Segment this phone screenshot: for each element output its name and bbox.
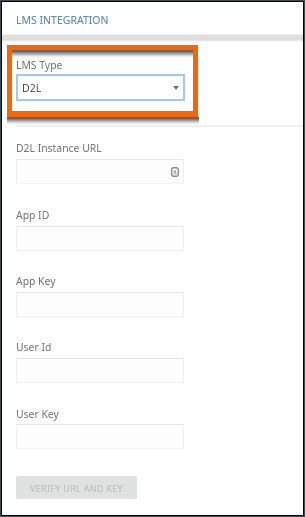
staticText: D2L	[22, 81, 42, 95]
other: Open dropdown	[173, 86, 179, 90]
staticText: LMS INTEGRATION	[16, 13, 109, 27]
button[interactable]	[16, 226, 184, 251]
button[interactable]	[16, 292, 184, 317]
button[interactable]: Pick instance	[16, 159, 184, 184]
staticText: User Id	[16, 340, 52, 354]
staticText: App ID	[16, 208, 50, 222]
button[interactable]: D2L	[16, 74, 185, 101]
staticText: LMS Type	[16, 58, 63, 72]
staticText: D2L Instance URL	[16, 141, 102, 155]
staticText: VERIFY URL AND KEY	[30, 482, 123, 494]
other: Pick instance	[171, 167, 179, 177]
button[interactable]	[16, 424, 184, 449]
staticText: App Key	[16, 274, 56, 288]
staticText: User Key	[16, 407, 59, 421]
button[interactable]: VERIFY URL AND KEY	[16, 476, 137, 499]
button[interactable]	[16, 358, 184, 383]
